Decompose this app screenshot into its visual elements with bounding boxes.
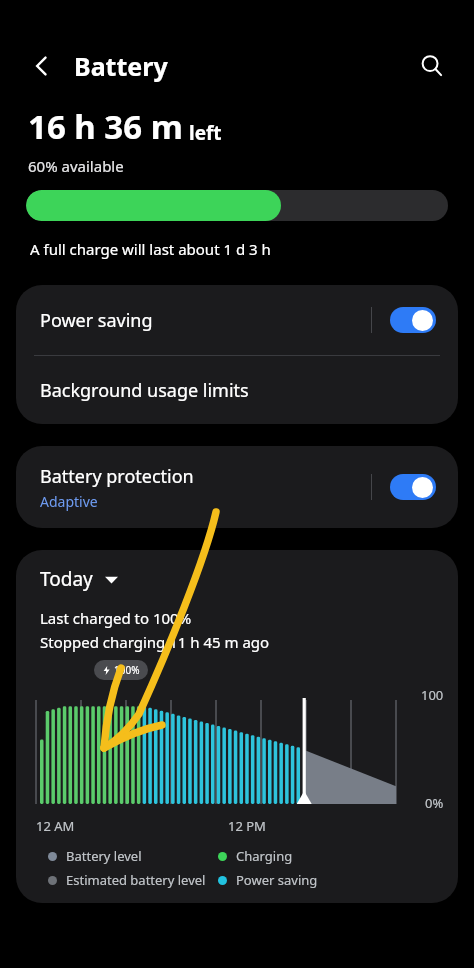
staticText: 0% (425, 794, 444, 812)
button[interactable]: Back (22, 46, 62, 86)
button[interactable]: Background usage limits (16, 356, 458, 424)
staticText: 16 h 36 m (28, 104, 183, 149)
staticText: 60% available (28, 156, 124, 176)
staticText: A full charge will last about 1 d 3 h (30, 239, 271, 259)
button[interactable]: Toggle (390, 474, 436, 500)
button[interactable]: Today (40, 566, 118, 592)
button[interactable]: Search (410, 44, 454, 88)
staticText: left (189, 120, 222, 146)
staticText: Battery level (66, 847, 142, 865)
staticText: 100 (421, 686, 444, 704)
staticText: Adaptive (40, 492, 98, 511)
button[interactable]: Toggle (390, 307, 436, 333)
staticText: Stopped charging 11 h 45 m ago (40, 632, 270, 652)
staticText: Power saving (236, 871, 318, 889)
staticText: Today (40, 566, 93, 592)
staticText: Estimated battery level (66, 871, 206, 889)
button[interactable]: Power saving (16, 285, 458, 355)
staticText: Battery (74, 49, 168, 83)
staticText: 12 AM (36, 817, 75, 835)
staticText: 12 PM (228, 817, 266, 835)
button[interactable]: Battery protection (16, 446, 458, 528)
staticText: Background usage limits (40, 378, 249, 403)
staticText: Battery protection (40, 464, 194, 489)
staticText: 100% (114, 663, 140, 677)
staticText: Charging (236, 847, 293, 865)
staticText: Power saving (40, 308, 153, 333)
staticText: Last charged to 100% (40, 608, 192, 628)
